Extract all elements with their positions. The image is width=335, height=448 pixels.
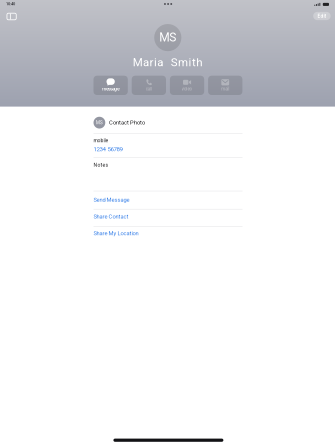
staticText: Share My Location — [93, 230, 138, 236]
button[interactable]: call — [132, 76, 166, 95]
button[interactable]: Edit — [313, 12, 331, 20]
staticText: Notes — [93, 162, 108, 168]
button[interactable]: Send Message — [93, 191, 242, 209]
button[interactable]: message — [93, 76, 128, 95]
staticText: 10:40 — [6, 2, 15, 6]
staticText: MS — [96, 120, 103, 125]
button[interactable]: Show Sidebar — [4, 10, 20, 23]
staticText: Edit — [317, 13, 326, 19]
staticText: Share Contact — [93, 213, 128, 220]
staticText: MS — [159, 30, 176, 44]
staticText: 1234 56789 — [93, 145, 122, 153]
button[interactable]: MS — [93, 112, 242, 133]
button[interactable]: Share My Location — [93, 227, 242, 244]
button[interactable]: Share Contact — [93, 210, 242, 227]
button[interactable]: video — [170, 76, 204, 95]
button[interactable]: mail — [208, 76, 242, 95]
staticText: Send Message — [93, 196, 129, 203]
staticText: call — [146, 86, 152, 92]
staticText: Contact Photo — [109, 119, 145, 126]
staticText: mobile — [93, 137, 108, 143]
staticText: mail — [221, 86, 229, 92]
staticText: Maria Smith — [133, 56, 202, 69]
staticText: video — [181, 86, 192, 92]
staticText: message — [102, 86, 119, 92]
button[interactable]: mobile — [93, 134, 242, 158]
